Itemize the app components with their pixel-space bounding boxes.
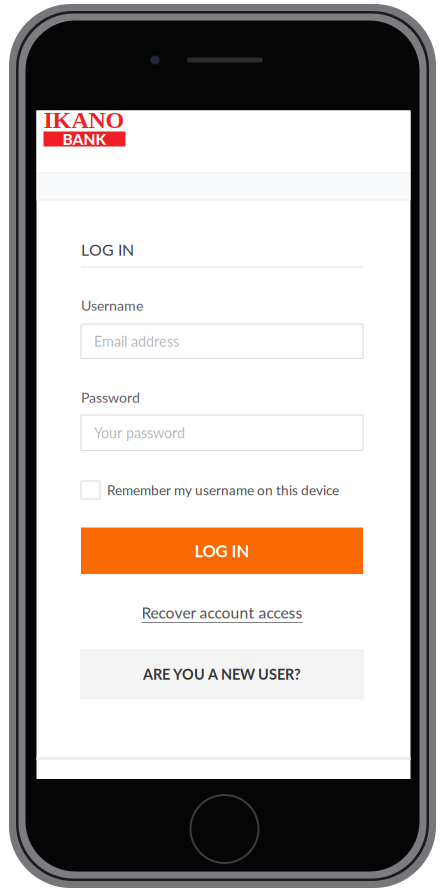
staticText: Remember my username on this device bbox=[107, 482, 339, 498]
staticText: Recover account access bbox=[141, 603, 302, 622]
button[interactable]: LOG IN bbox=[81, 527, 363, 574]
staticText: ARE YOU A NEW USER? bbox=[143, 666, 301, 683]
staticText: Your password bbox=[94, 424, 185, 441]
staticText: Email address bbox=[94, 333, 179, 350]
staticText: Username bbox=[81, 297, 143, 314]
button[interactable]: Remember my username on this device bbox=[81, 480, 363, 500]
button[interactable]: Recover account access bbox=[81, 602, 363, 622]
staticText: LOG IN bbox=[194, 541, 249, 561]
button[interactable]: ARE YOU A NEW USER? bbox=[81, 650, 363, 699]
staticText: LOG IN bbox=[81, 240, 134, 259]
staticText: IKANO bbox=[43, 107, 124, 133]
staticText: BANK bbox=[62, 130, 106, 148]
staticText: Password bbox=[81, 389, 140, 406]
